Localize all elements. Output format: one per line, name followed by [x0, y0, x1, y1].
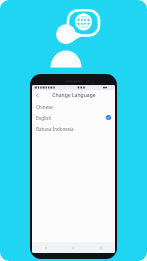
staticText: Change Language	[52, 92, 96, 99]
staticText: Chinese	[36, 104, 53, 110]
button[interactable]: Back	[32, 242, 59, 253]
button[interactable]: Bahasa Indonesia	[32, 123, 115, 134]
staticText: Bahasa Indonesia	[36, 126, 74, 132]
button[interactable]: Recent apps	[87, 242, 115, 253]
button[interactable]: Back	[32, 90, 43, 101]
other: Change language illustration	[49, 9, 99, 72]
staticText: English	[36, 115, 52, 121]
button[interactable]: Chinese	[32, 101, 115, 112]
button[interactable]: English	[32, 112, 115, 123]
